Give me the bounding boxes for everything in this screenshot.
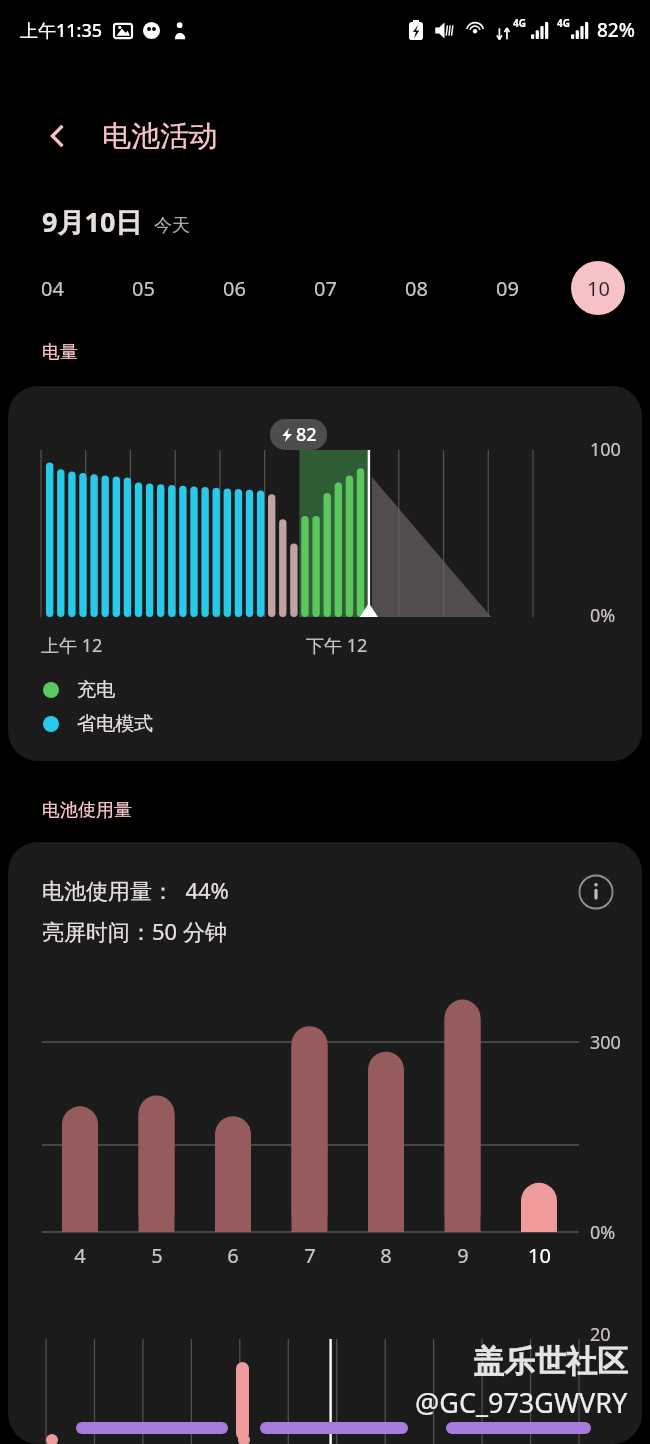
staticText: 82% <box>597 17 635 43</box>
button[interactable]: 82 <box>8 386 642 761</box>
button[interactable]: 09 <box>480 261 534 315</box>
staticText: 10 <box>528 1242 551 1269</box>
button[interactable]: 05 <box>116 261 170 315</box>
staticText: 上午11:35 <box>20 18 103 43</box>
button[interactable]: 06 <box>207 261 261 315</box>
staticText: 上午 12 <box>41 633 103 658</box>
staticText: 电池使用量 <box>42 799 132 822</box>
staticText: 盖乐世社区 <box>473 1342 628 1381</box>
button[interactable]: 充电 <box>43 678 115 702</box>
staticText: 6 <box>227 1242 239 1269</box>
staticText: 07 <box>314 275 337 302</box>
staticText: 充电 <box>77 678 115 702</box>
staticText: 4 <box>74 1242 86 1269</box>
staticText: 5 <box>151 1242 163 1269</box>
staticText: 下午 12 <box>306 633 368 658</box>
staticText: 省电模式 <box>77 712 153 736</box>
staticText: 电池活动 <box>102 118 218 155</box>
button[interactable]: 07 <box>298 261 352 315</box>
button[interactable]: 08 <box>389 261 443 315</box>
button[interactable]: 04 <box>25 261 79 315</box>
staticText: 05 <box>132 275 155 302</box>
button[interactable]: 10 <box>571 261 625 315</box>
staticText: 9月10日 <box>42 203 143 240</box>
button[interactable]: 省电模式 <box>43 712 153 736</box>
staticText: 0% <box>590 603 616 628</box>
staticText: 100 <box>590 437 621 462</box>
staticText: 08 <box>405 275 428 302</box>
staticText: 06 <box>223 275 246 302</box>
staticText: 10 <box>587 275 610 302</box>
staticText: 4G <box>513 16 526 30</box>
button[interactable]: 返回 <box>34 112 82 160</box>
staticText: 09 <box>496 275 519 302</box>
staticText: 9 <box>457 1242 469 1269</box>
staticText: 04 <box>41 275 64 302</box>
staticText: 82 <box>296 422 317 447</box>
staticText: 300 <box>590 1030 621 1055</box>
staticText: @GC_973GWVRY <box>415 1384 628 1421</box>
staticText: 7 <box>304 1242 316 1269</box>
staticText: 8 <box>380 1242 392 1269</box>
staticText: 今天 <box>154 214 190 237</box>
staticText: 电池使用量： 44% <box>42 875 229 905</box>
staticText: 电量 <box>42 341 78 364</box>
staticText: 20 <box>590 1322 611 1347</box>
staticText: 0% <box>590 1220 616 1245</box>
staticText: 亮屏时间：50 分钟 <box>42 916 227 946</box>
button[interactable]: 信息 <box>570 866 622 918</box>
button[interactable]: 电池使用量： 44% <box>8 842 642 1444</box>
staticText: 4G <box>557 16 570 30</box>
